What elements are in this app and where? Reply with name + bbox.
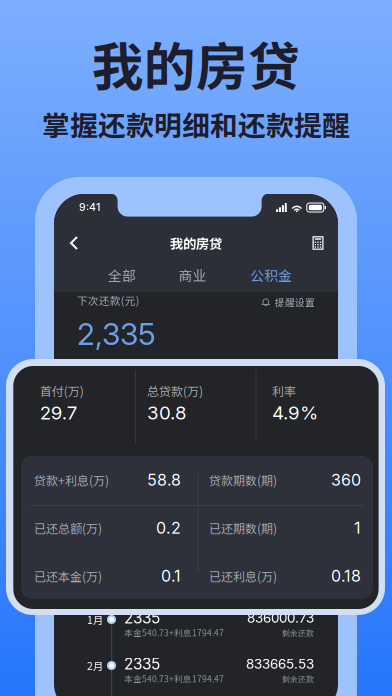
button[interactable]: 公积金 [242,262,300,288]
staticText: 总贷款(万) [158,373,200,387]
staticText: 已还总额(万) [34,519,102,537]
button[interactable]: 提醒设置 [249,294,315,310]
staticText: 4.9% [248,389,284,407]
staticText: 2月 [87,658,103,673]
staticText: 掌握还款明细和还款提醒 [42,104,350,144]
staticText: 1 [354,518,361,538]
staticText: 30.8 [147,401,187,424]
staticText: 提醒设置 [275,295,315,309]
staticText: 首付(万) [40,382,84,399]
button[interactable]: 返回 [56,226,92,260]
staticText: 29.7 [40,401,78,424]
staticText: 商业 [179,265,207,285]
staticText: 利率 [248,373,266,387]
staticText: 360 [331,470,361,490]
staticText: 0.18 [331,566,361,586]
staticText: 已还期数(期) [209,519,277,537]
staticText: 本金540.73+利息1794.47 [124,626,224,639]
staticText: 2,335 [77,316,156,352]
staticText: 贷款期数(期) [209,471,277,489]
button[interactable]: 全部 [93,262,151,288]
staticText: 利率 [272,382,296,399]
staticText: 30.8 [158,389,189,407]
staticText: 0.2 [156,518,181,538]
staticText: 全部 [108,265,136,285]
staticText: 1月 [87,612,103,627]
staticText: 2335 [124,655,160,673]
staticText: 公积金 [250,265,292,285]
staticText: 我的房贷 [170,233,222,253]
staticText: 剩余还款 [282,673,314,685]
staticText: 本金540.73+利息1794.47 [124,672,224,685]
staticText: 29.7 [68,389,98,407]
staticText: 首付(万) [68,373,101,387]
button[interactable]: 商业 [164,262,222,288]
staticText: 下次还款(元) [77,292,140,308]
staticText: 我的房贷 [92,26,300,100]
button[interactable]: 计算器 [300,226,336,260]
staticText: 总贷款(万) [147,382,203,399]
staticText: 已还利息(万) [209,567,277,585]
staticText: 2335 [124,609,160,627]
staticText: 833665.53 [246,656,314,672]
staticText: 贷款+利息(万) [34,471,109,489]
staticText: 836000.73 [247,610,314,626]
staticText: 剩余还款 [282,627,314,639]
staticText: 58.8 [147,470,181,490]
staticText: 9:41 [79,200,100,213]
staticText: 4.9% [272,401,318,424]
staticText: 已还本金(万) [34,567,102,585]
staticText: 0.1 [161,566,181,586]
